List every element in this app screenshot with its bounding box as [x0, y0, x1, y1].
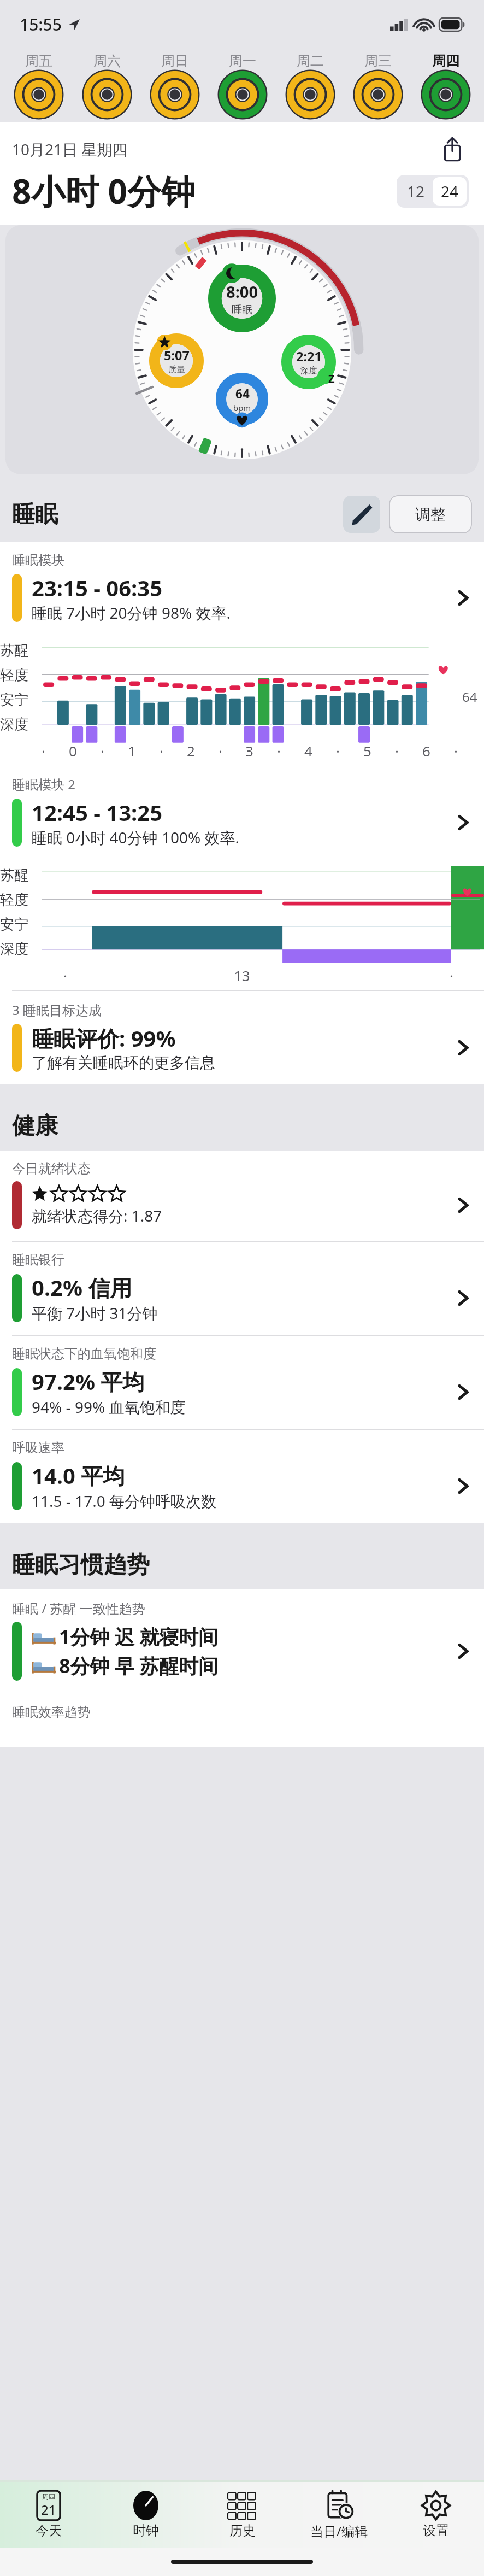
- staticText: 了解有关睡眠环的更多信息: [32, 1053, 215, 1072]
- staticText: 质量: [168, 364, 185, 375]
- staticText: 平衡 7小时 31分钟: [32, 1302, 158, 1323]
- staticText: ·: [395, 741, 399, 760]
- staticText: 睡眠模块 2: [12, 775, 75, 793]
- staticText: 周二: [297, 52, 324, 69]
- staticText: 6: [422, 741, 430, 760]
- button[interactable]: 8:00: [208, 265, 276, 332]
- staticText: ·: [160, 741, 163, 760]
- staticText: ·: [277, 741, 281, 760]
- button[interactable]: 睡眠模块 2: [0, 765, 484, 860]
- staticText: 11.5 - 17.0 每分钟呼吸次数: [32, 1491, 216, 1511]
- staticText: 94% - 99% 血氧饱和度: [32, 1396, 186, 1417]
- staticText: 健康: [12, 1112, 58, 1141]
- staticText: 安宁: [0, 916, 28, 934]
- button[interactable]: 当日/编辑: [291, 2482, 387, 2548]
- staticText: 24: [441, 181, 459, 202]
- button[interactable]: 周六: [73, 50, 141, 120]
- staticText: ·: [450, 966, 453, 985]
- staticText: 睡眠习惯趋势: [12, 1551, 150, 1580]
- button[interactable]: 设置: [387, 2482, 484, 2548]
- staticText: 21: [41, 2501, 56, 2519]
- staticText: 周六: [93, 52, 121, 69]
- staticText: 呼吸速率: [12, 1440, 64, 1456]
- staticText: ·: [42, 741, 45, 760]
- button[interactable]: 周二: [276, 50, 344, 120]
- button[interactable]: 周三: [344, 50, 412, 120]
- staticText: 深度: [300, 365, 317, 376]
- staticText: 64: [462, 688, 477, 706]
- staticText: 周五: [25, 52, 52, 69]
- staticText: 设置: [423, 2522, 449, 2539]
- staticText: 64: [235, 385, 250, 402]
- staticText: 5: [363, 741, 371, 760]
- staticText: ·: [454, 741, 458, 760]
- staticText: 时钟: [133, 2522, 159, 2539]
- staticText: 今天: [36, 2522, 62, 2539]
- button[interactable]: 周日: [141, 50, 209, 120]
- button[interactable]: Edit: [343, 496, 380, 533]
- staticText: 睡眠: [12, 500, 58, 529]
- staticText: 4: [304, 741, 312, 760]
- staticText: 历史: [229, 2522, 256, 2539]
- button[interactable]: 3 睡眠目标达成: [0, 991, 484, 1084]
- button[interactable]: 睡眠状态下的血氧饱和度: [0, 1336, 484, 1429]
- staticText: 5:07: [164, 347, 190, 364]
- staticText: 97.2% 平均: [32, 1366, 145, 1396]
- button[interactable]: 12: [399, 177, 433, 206]
- staticText: 1分钟 迟 就寝时间: [59, 1623, 219, 1650]
- staticText: 周四: [42, 2492, 55, 2501]
- staticText: 苏醒: [0, 866, 28, 884]
- staticText: 8小时 0分钟: [12, 168, 196, 214]
- staticText: 3 睡眠目标达成: [12, 1001, 102, 1019]
- button[interactable]: 时钟: [97, 2482, 194, 2548]
- button[interactable]: 5:07: [149, 333, 204, 388]
- button[interactable]: 呼吸速率: [0, 1430, 484, 1523]
- staticText: 调整: [415, 505, 446, 524]
- button[interactable]: 睡眠 / 苏醒 一致性趋势: [0, 1589, 484, 1693]
- button[interactable]: 周五: [4, 50, 73, 120]
- staticText: 就绪状态得分: 1.87: [32, 1205, 162, 1226]
- staticText: 12:45 - 13:25: [32, 797, 163, 827]
- staticText: 深度: [0, 940, 28, 958]
- staticText: 当日/编辑: [310, 2522, 368, 2540]
- button[interactable]: 24: [433, 177, 467, 206]
- staticText: 睡眠: [232, 303, 253, 316]
- staticText: 1: [128, 741, 136, 760]
- button[interactable]: 睡眠银行: [0, 1242, 484, 1335]
- staticText: ·: [336, 741, 340, 760]
- staticText: Z: [328, 371, 335, 386]
- staticText: ·: [219, 741, 222, 760]
- button[interactable]: 历史: [194, 2482, 291, 2548]
- staticText: 8:00: [226, 281, 258, 303]
- button[interactable]: 周四: [0, 2482, 97, 2548]
- staticText: 15:55: [20, 13, 62, 36]
- staticText: 2: [187, 741, 195, 760]
- staticText: 睡眠 0小时 40分钟 100% 效率.: [32, 827, 239, 848]
- button[interactable]: 周四: [412, 50, 480, 120]
- button[interactable]: 8:00: [5, 225, 479, 474]
- button[interactable]: 周一: [209, 50, 276, 120]
- staticText: 23:15 - 06:35: [32, 573, 163, 602]
- staticText: 周一: [229, 52, 256, 69]
- staticText: 睡眠银行: [12, 1252, 64, 1268]
- staticText: 0.2% 信用: [32, 1272, 132, 1302]
- staticText: 周三: [364, 52, 392, 69]
- button[interactable]: 睡眠模块: [0, 542, 484, 635]
- staticText: ·: [101, 741, 104, 760]
- button[interactable]: Share: [436, 133, 469, 166]
- staticText: 13: [234, 966, 250, 985]
- staticText: 12: [407, 181, 425, 202]
- staticText: bpm: [233, 402, 251, 413]
- button[interactable]: Z: [281, 335, 336, 389]
- button[interactable]: 64: [216, 373, 268, 425]
- staticText: 睡眠评价: 99%: [32, 1023, 176, 1053]
- button[interactable]: 今日就绪状态: [0, 1151, 484, 1241]
- staticText: ·: [63, 966, 67, 985]
- button[interactable]: 调整: [389, 495, 472, 533]
- staticText: 睡眠状态下的血氧饱和度: [12, 1346, 156, 1362]
- staticText: 安宁: [0, 691, 28, 709]
- staticText: 睡眠模块: [12, 552, 64, 568]
- staticText: 14.0 平均: [32, 1460, 125, 1491]
- staticText: 周日: [161, 52, 188, 69]
- staticText: 10月21日 星期四: [12, 139, 128, 160]
